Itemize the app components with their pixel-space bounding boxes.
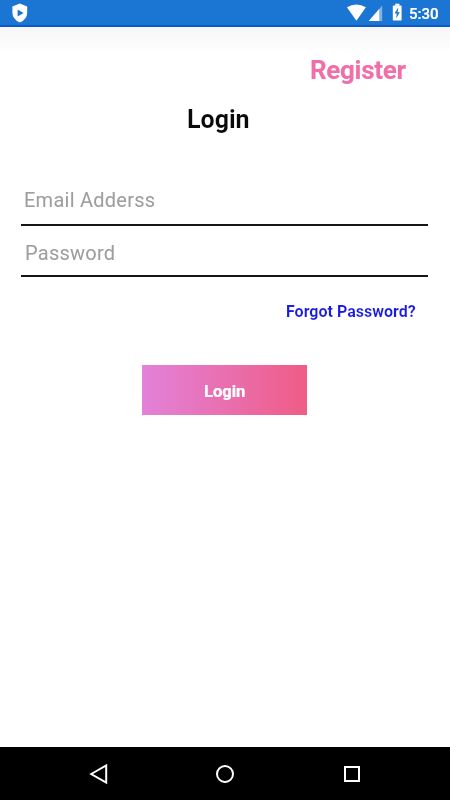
button[interactable]: Password [21, 236, 428, 277]
button[interactable]: Forgot Password? [286, 302, 416, 321]
button[interactable] [201, 750, 249, 798]
staticText: Email Adderss [24, 188, 156, 211]
button[interactable] [328, 750, 376, 798]
staticText: Password [25, 241, 116, 264]
staticText: Login [187, 105, 250, 134]
staticText: 5:30 [409, 5, 439, 23]
button[interactable]: Register [310, 55, 406, 85]
button[interactable] [75, 750, 123, 798]
button[interactable]: Email Adderss [21, 183, 428, 226]
button[interactable]: Login [142, 365, 307, 415]
staticText: Login [204, 382, 246, 401]
